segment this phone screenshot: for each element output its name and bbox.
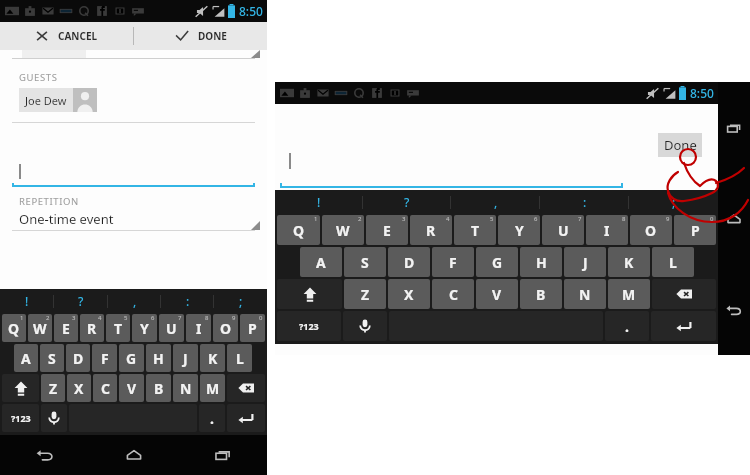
button[interactable]: . <box>199 404 225 432</box>
button[interactable]: I <box>586 215 628 245</box>
button[interactable]: V <box>119 374 144 402</box>
button[interactable]: Z <box>344 279 386 309</box>
button[interactable]: Home <box>89 435 178 475</box>
staticText: 0 <box>710 215 714 223</box>
button[interactable]: Q <box>277 215 320 245</box>
button[interactable]: Voice input <box>343 311 387 341</box>
button[interactable]: T <box>106 314 130 342</box>
button[interactable]: G <box>476 247 518 277</box>
staticText: Q <box>8 319 20 338</box>
staticText: K <box>208 349 218 368</box>
button[interactable]: Shift <box>2 374 39 402</box>
button[interactable]: N <box>173 374 198 402</box>
button[interactable]: Enter <box>651 311 716 341</box>
button[interactable]: One-time event <box>0 210 267 230</box>
button[interactable]: C <box>432 279 474 309</box>
button[interactable]: X <box>67 374 91 402</box>
button[interactable]: W <box>28 314 52 342</box>
staticText: Q <box>293 221 305 240</box>
button[interactable]: P <box>240 314 265 342</box>
button[interactable]: Y <box>132 314 157 342</box>
button[interactable]: ! <box>275 190 363 214</box>
button[interactable]: Backspace <box>227 374 265 402</box>
button[interactable]: A <box>300 247 342 277</box>
button[interactable]: ? <box>54 289 108 313</box>
button[interactable]: O <box>213 314 238 342</box>
button[interactable]: L <box>227 344 252 372</box>
button[interactable]: ? <box>363 190 451 214</box>
button[interactable]: H <box>146 344 171 372</box>
button[interactable]: L <box>652 247 694 277</box>
button[interactable]: ?123 <box>277 311 341 341</box>
button[interactable]: R <box>410 215 452 245</box>
button[interactable]: P <box>674 215 716 245</box>
button[interactable]: Y <box>498 215 540 245</box>
button[interactable]: A <box>14 344 38 372</box>
button[interactable]: D <box>66 344 90 372</box>
button[interactable]: E <box>366 215 408 245</box>
button[interactable]: J <box>173 344 198 372</box>
button[interactable]: ; <box>629 190 718 214</box>
button[interactable]: H <box>520 247 562 277</box>
button[interactable]: S <box>344 247 386 277</box>
button[interactable]: G <box>119 344 144 372</box>
button[interactable]: K <box>200 344 225 372</box>
button[interactable]: Recent apps <box>718 82 750 173</box>
button[interactable]: Joe Dew <box>19 88 97 112</box>
button[interactable]: Done <box>658 133 702 157</box>
staticText: B <box>154 379 164 398</box>
button[interactable]: Back <box>718 264 750 355</box>
button[interactable]: N <box>564 279 606 309</box>
button[interactable]: I <box>186 314 211 342</box>
button[interactable]: D <box>388 247 430 277</box>
button[interactable]: B <box>520 279 562 309</box>
button[interactable]: Z <box>41 374 65 402</box>
button[interactable]: S <box>40 344 64 372</box>
button[interactable]: V <box>476 279 518 309</box>
staticText: B <box>536 285 546 304</box>
button[interactable]: Voice input <box>41 404 67 432</box>
button[interactable]: K <box>608 247 650 277</box>
button[interactable]: E <box>54 314 78 342</box>
button[interactable]: R <box>80 314 104 342</box>
button[interactable]: U <box>542 215 584 245</box>
button[interactable]: : <box>540 190 629 214</box>
button[interactable]: ! <box>0 289 54 313</box>
button[interactable]: CANCEL <box>0 22 133 50</box>
staticText: U <box>166 319 177 338</box>
button[interactable]: Backspace <box>652 279 716 309</box>
button[interactable]: Home <box>718 173 750 264</box>
button[interactable]: C <box>93 374 117 402</box>
button[interactable]: M <box>608 279 650 309</box>
button[interactable]: ; <box>214 289 267 313</box>
staticText: ? <box>404 194 410 210</box>
button[interactable]: : <box>161 289 214 313</box>
staticText: L <box>236 349 244 368</box>
button[interactable]: O <box>630 215 672 245</box>
button[interactable]: Q <box>2 314 26 342</box>
button[interactable]: F <box>92 344 117 372</box>
staticText: W <box>336 221 350 240</box>
button[interactable]: M <box>200 374 225 402</box>
button[interactable]: B <box>146 374 171 402</box>
button[interactable]: U <box>159 314 184 342</box>
button[interactable]: Shift <box>277 279 342 309</box>
button[interactable]: . <box>605 311 649 341</box>
button[interactable]: X <box>388 279 430 309</box>
button[interactable]: Recent apps <box>178 435 267 475</box>
button[interactable]: , <box>108 289 161 313</box>
button[interactable]: Enter <box>227 404 265 432</box>
button[interactable]: , <box>451 190 540 214</box>
button[interactable]: J <box>564 247 606 277</box>
button[interactable] <box>0 161 267 183</box>
button[interactable]: DONE <box>134 22 267 50</box>
button[interactable]: T <box>454 215 496 245</box>
button[interactable]: ?123 <box>2 404 39 432</box>
staticText: ?123 <box>11 412 31 424</box>
staticText: : <box>583 194 587 210</box>
button[interactable]: W <box>322 215 364 245</box>
button[interactable]: F <box>432 247 474 277</box>
button[interactable]: Back <box>0 435 89 475</box>
